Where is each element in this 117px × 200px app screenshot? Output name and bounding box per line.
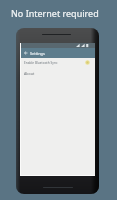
button[interactable]: About <box>21 68 95 79</box>
staticText: No Internet required <box>11 7 99 19</box>
button[interactable]: Enable Bluetooth Sync <box>21 57 95 68</box>
button[interactable]: Navigate up <box>21 48 30 58</box>
staticText: Settings <box>30 51 45 56</box>
staticText: Enable Bluetooth Sync <box>24 61 58 65</box>
staticText: About <box>24 71 35 76</box>
